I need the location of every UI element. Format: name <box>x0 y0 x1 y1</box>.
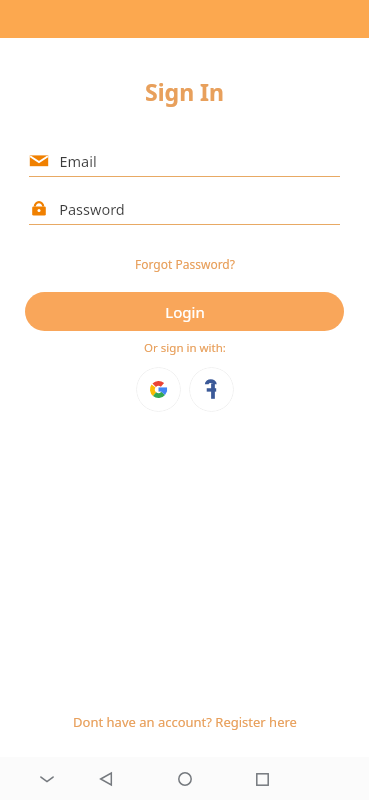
button[interactable]: Password <box>29 199 340 225</box>
button[interactable]: Email <box>29 151 340 177</box>
staticText: Sign In <box>145 76 224 107</box>
staticText: Login <box>165 302 205 322</box>
button[interactable]: Hide keyboard <box>28 760 66 798</box>
button[interactable]: Sign in with Google <box>136 367 181 412</box>
button[interactable]: Home <box>166 760 204 798</box>
staticText: Dont have an account? Register here <box>73 713 297 731</box>
staticText: Email <box>59 151 97 171</box>
button[interactable]: Login <box>25 292 344 331</box>
staticText: Or sign in with: <box>144 340 226 356</box>
button[interactable]: Dont have an account? Register here <box>65 709 305 735</box>
button[interactable]: Back <box>87 760 125 798</box>
button[interactable]: Sign in with Facebook <box>189 367 234 412</box>
staticText: Forgot Password? <box>135 256 235 272</box>
button[interactable]: Recent apps <box>243 760 281 798</box>
staticText: Password <box>59 199 125 219</box>
button[interactable]: Forgot Password? <box>129 254 241 274</box>
